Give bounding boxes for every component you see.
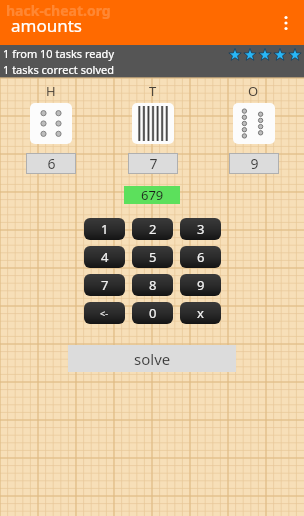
staticText: 1 tasks correct solved (3, 62, 115, 77)
button[interactable]: Place value card (30, 103, 72, 144)
button[interactable]: x (180, 302, 221, 324)
staticText: hack-cheat.org (6, 1, 111, 20)
staticText: 8 (149, 276, 157, 294)
button[interactable]: More options (272, 3, 300, 43)
button[interactable]: 7 (129, 154, 177, 173)
staticText: 7 (149, 154, 158, 173)
button[interactable]: 8 (132, 274, 173, 296)
staticText: 6 (47, 154, 56, 173)
staticText: 0 (149, 304, 157, 322)
staticText: 9 (197, 276, 205, 294)
button[interactable]: 5 (132, 246, 173, 268)
staticText: 6 (197, 248, 205, 266)
staticText: T (149, 82, 157, 100)
button[interactable]: 679 (124, 186, 180, 204)
button[interactable]: <- (84, 302, 125, 324)
button[interactable]: Place value card (132, 103, 174, 144)
button[interactable]: 6 (180, 246, 221, 268)
button[interactable]: 9 (230, 154, 278, 173)
button[interactable]: 4 (84, 246, 125, 268)
staticText: 4 (101, 248, 109, 266)
staticText: 5 (149, 248, 157, 266)
button[interactable]: Place value card (233, 103, 275, 144)
staticText: x (197, 304, 204, 322)
staticText: 1 from 10 tasks ready (3, 46, 114, 61)
staticText: O (248, 82, 259, 100)
button[interactable]: 0 (132, 302, 173, 324)
staticText: amounts (11, 14, 83, 37)
button[interactable]: 9 (180, 274, 221, 296)
button[interactable]: 6 (27, 154, 75, 173)
button[interactable]: solve (68, 345, 236, 372)
button[interactable]: 1 (84, 218, 125, 240)
staticText: 2 (149, 220, 157, 238)
button[interactable]: 3 (180, 218, 221, 240)
staticText: 1 (101, 220, 109, 238)
staticText: <- (100, 307, 109, 319)
staticText: solve (134, 349, 171, 369)
staticText: H (46, 82, 56, 100)
staticText: 9 (250, 154, 259, 173)
button[interactable]: 2 (132, 218, 173, 240)
staticText: 7 (101, 276, 109, 294)
button[interactable]: 7 (84, 274, 125, 296)
staticText: 679 (141, 186, 164, 204)
staticText: 3 (197, 220, 205, 238)
